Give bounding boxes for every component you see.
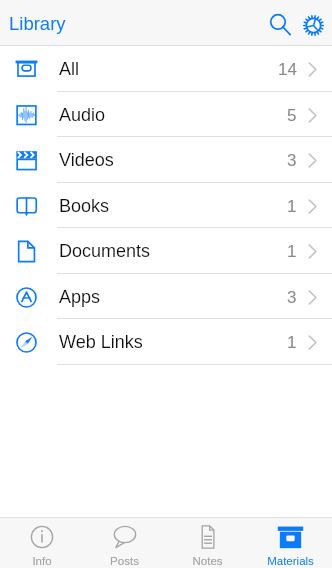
staticText: Documents [59, 241, 151, 261]
button[interactable]: Audio [0, 91, 332, 137]
button[interactable]: Settings [293, 1, 332, 46]
staticText: 5 [287, 106, 297, 125]
staticText: Apps [59, 287, 101, 307]
staticText: 1 [287, 333, 297, 352]
button[interactable]: All [0, 45, 332, 91]
button[interactable]: Materials [249, 518, 332, 568]
button[interactable]: Posts [83, 518, 166, 568]
button[interactable]: Info [0, 518, 83, 568]
staticText: Audio [59, 105, 106, 125]
staticText: Materials [267, 555, 314, 568]
button[interactable]: Notes [166, 518, 249, 568]
button[interactable]: Videos [0, 136, 332, 182]
staticText: 1 [287, 242, 297, 261]
button[interactable]: Books [0, 182, 332, 228]
staticText: Videos [59, 150, 114, 170]
button[interactable]: Search [258, 1, 300, 46]
staticText: All [59, 59, 80, 79]
staticText: Notes [192, 555, 223, 568]
staticText: Posts [110, 555, 139, 568]
staticText: 14 [278, 60, 297, 79]
button[interactable]: Documents [0, 227, 332, 273]
button[interactable]: Apps [0, 273, 332, 319]
staticText: 3 [287, 288, 297, 307]
staticText: Books [59, 196, 110, 216]
staticText: 3 [287, 151, 297, 170]
staticText: 1 [287, 197, 297, 216]
staticText: Web Links [59, 332, 143, 352]
button[interactable]: Web Links [0, 318, 332, 364]
staticText: Library [9, 13, 66, 34]
staticText: Info [32, 555, 52, 568]
